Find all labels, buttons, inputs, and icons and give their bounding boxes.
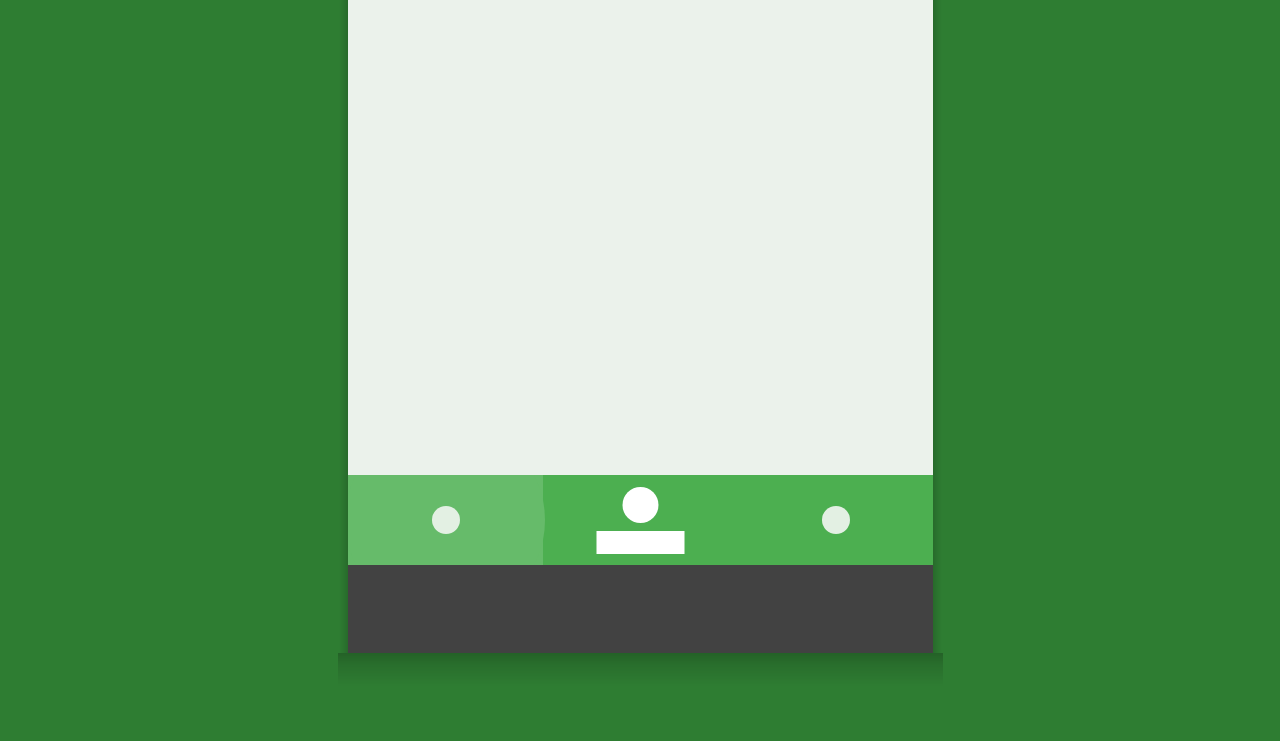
button[interactable]: First tab [348,475,543,565]
button[interactable]: Second tab, selected [543,475,738,565]
button[interactable]: Third tab [738,475,933,565]
